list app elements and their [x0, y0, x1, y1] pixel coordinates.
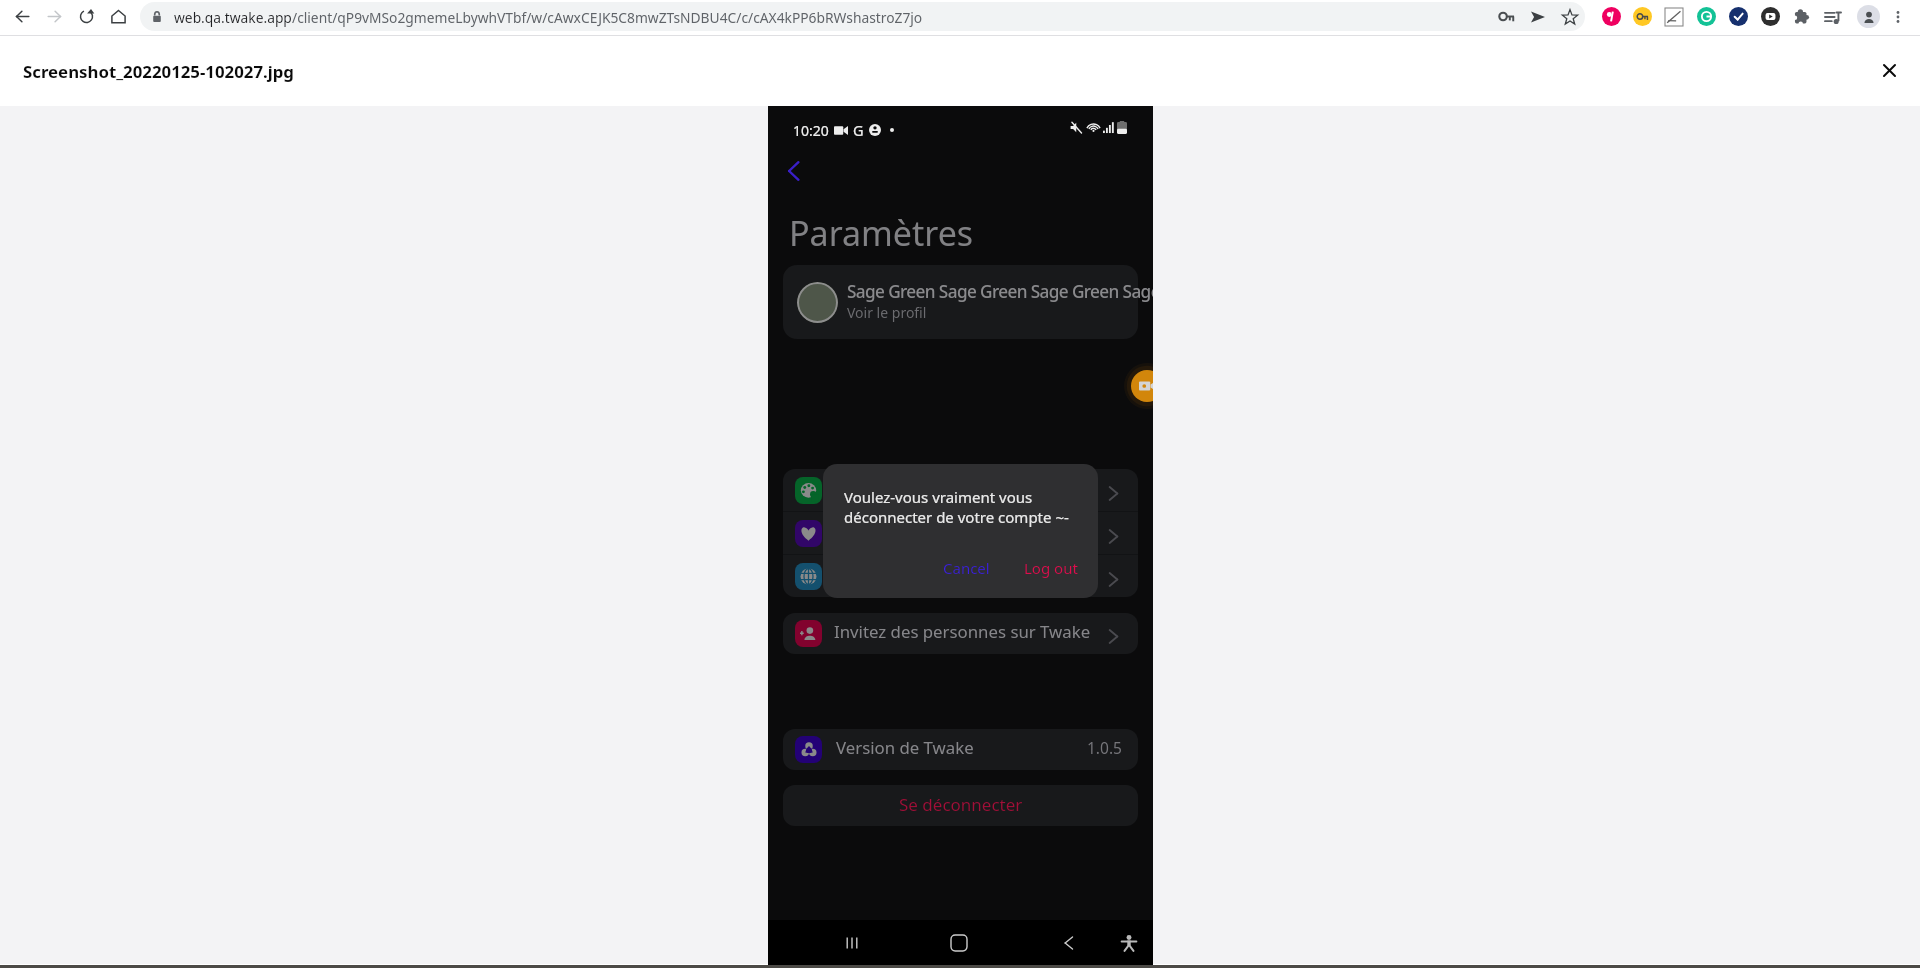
staticText: /client/qP9vMSo2gmemeLbywhVTbf/w/cAwxCEJ… — [292, 8, 923, 27]
button[interactable]: Profile — [1857, 5, 1880, 28]
staticText: Voulez-vous vraiment vous déconnecter de… — [844, 487, 1069, 527]
button[interactable]: Extension — [1693, 0, 1719, 33]
staticText: web.qa.twake.app — [174, 8, 292, 27]
button[interactable]: Extension — [1661, 0, 1687, 33]
button[interactable]: Extension — [1725, 0, 1751, 33]
staticText: Apparence — [834, 477, 919, 500]
staticText: Invitez des personnes sur Twake — [834, 620, 1091, 643]
staticText: Se déconnecter — [899, 793, 1023, 816]
button[interactable]: Extension — [1757, 0, 1783, 33]
button[interactable] — [140, 2, 1585, 31]
button[interactable]: Back — [1047, 920, 1091, 965]
button[interactable]: Extension — [1629, 0, 1655, 33]
staticText: Favoris — [834, 520, 891, 543]
button[interactable]: Passwords — [1492, 0, 1520, 33]
button[interactable]: More — [1884, 0, 1912, 33]
button[interactable]: Favoris — [783, 512, 1138, 554]
button[interactable]: Back — [8, 0, 36, 33]
button[interactable]: Bookmark — [1556, 0, 1584, 33]
button[interactable]: Accessibility — [1107, 920, 1151, 965]
button[interactable]: Start video call — [1131, 370, 1153, 402]
button[interactable]: Back — [777, 155, 809, 187]
staticText: Log out — [1024, 558, 1078, 578]
staticText: Cancel — [943, 558, 990, 578]
button[interactable]: Log out — [1016, 553, 1086, 583]
button[interactable]: Invitez des personnes sur Twake — [783, 613, 1138, 654]
staticText: Version de Twake — [836, 736, 974, 759]
staticText: 1.0.5 — [1087, 737, 1122, 758]
button[interactable] — [783, 265, 1138, 339]
button[interactable]: Extension — [1598, 0, 1624, 33]
staticText: Screenshot_20220125-102027.jpg — [23, 60, 294, 83]
staticText: Voir le profil — [847, 303, 927, 322]
button[interactable]: Send — [1524, 0, 1552, 33]
staticText: Sage Green Sage Green Sage Green Sage Gr… — [847, 280, 1153, 303]
button[interactable]: Recents — [830, 920, 874, 965]
staticText: Paramètres — [789, 210, 974, 256]
staticText: 10:20 — [793, 121, 829, 140]
button[interactable]: Forward — [40, 0, 68, 33]
button[interactable]: Close — [1874, 55, 1904, 85]
button[interactable]: Langue — [783, 555, 1138, 597]
button[interactable]: Extensions — [1788, 0, 1816, 33]
button[interactable]: Home — [104, 0, 132, 33]
button[interactable]: Reload — [72, 0, 100, 33]
button[interactable]: Apparence — [783, 469, 1138, 511]
button[interactable]: Media — [1819, 0, 1847, 33]
button[interactable]: Se déconnecter — [783, 785, 1138, 826]
button[interactable]: Version de Twake — [783, 729, 1138, 770]
button[interactable]: Home — [937, 920, 981, 965]
staticText: G — [853, 120, 864, 140]
button[interactable]: Cancel — [935, 553, 998, 583]
